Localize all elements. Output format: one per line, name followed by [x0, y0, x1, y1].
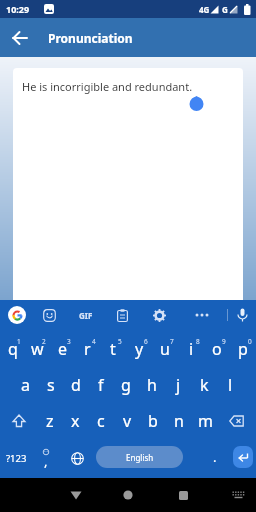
button[interactable]: f — [88, 367, 113, 403]
button[interactable]: v — [114, 403, 140, 439]
button[interactable]: l — [217, 367, 243, 403]
staticText: ?123 — [6, 452, 27, 465]
staticText: v — [123, 410, 132, 432]
button[interactable]: s — [38, 367, 63, 403]
button[interactable]: u — [152, 330, 178, 367]
staticText: 4 — [92, 337, 96, 346]
button[interactable]: a — [13, 367, 38, 403]
staticText: q — [8, 338, 18, 360]
staticText: English — [126, 452, 154, 463]
button[interactable]: i — [178, 330, 204, 367]
button[interactable]: k — [191, 367, 217, 403]
button[interactable]: . — [200, 439, 230, 478]
button[interactable] — [228, 478, 248, 512]
button[interactable]: n — [166, 403, 192, 439]
staticText: 5 — [118, 337, 122, 346]
staticText: o — [212, 338, 222, 360]
button[interactable]: p — [230, 330, 256, 367]
button[interactable]: , — [32, 439, 60, 478]
button[interactable] — [115, 308, 129, 322]
staticText: m — [198, 410, 213, 432]
button[interactable] — [60, 439, 94, 478]
staticText: c — [97, 410, 105, 432]
staticText: z — [46, 410, 54, 432]
staticText: d — [71, 374, 81, 396]
button[interactable] — [64, 478, 88, 512]
button[interactable]: d — [63, 367, 88, 403]
staticText: . — [213, 448, 217, 466]
staticText: k — [200, 374, 209, 396]
staticText: GIF — [79, 310, 93, 321]
button[interactable]: ?123 — [0, 439, 32, 478]
staticText: 6 — [144, 337, 148, 346]
staticText: 0 — [248, 337, 252, 346]
button[interactable]: j — [165, 367, 191, 403]
button[interactable]: r — [75, 330, 100, 367]
button[interactable] — [42, 308, 56, 322]
button[interactable] — [194, 308, 210, 322]
button[interactable]: y — [126, 330, 152, 367]
staticText: f — [98, 374, 104, 396]
button[interactable] — [116, 478, 140, 512]
button[interactable]: GIF — [74, 300, 98, 330]
staticText: h — [147, 374, 157, 396]
button[interactable]: b — [140, 403, 166, 439]
button[interactable] — [8, 306, 26, 324]
button[interactable]: English — [96, 446, 183, 468]
staticText: e — [58, 338, 68, 360]
staticText: He is incorrigible and redundant. — [22, 79, 193, 94]
button[interactable]: x — [62, 403, 88, 439]
button[interactable] — [218, 403, 256, 439]
button[interactable]: h — [139, 367, 165, 403]
staticText: 7 — [170, 337, 174, 346]
button[interactable]: q — [0, 330, 25, 367]
staticText: G — [222, 4, 228, 15]
button[interactable] — [235, 307, 250, 324]
button[interactable]: w — [25, 330, 50, 367]
staticText: Pronunciation — [48, 30, 133, 46]
button[interactable] — [171, 478, 195, 512]
button[interactable]: g — [113, 367, 139, 403]
button[interactable] — [233, 446, 253, 468]
button[interactable]: e — [50, 330, 75, 367]
staticText: a — [21, 374, 30, 396]
staticText: 3 — [67, 337, 71, 346]
staticText: r — [84, 338, 91, 360]
button[interactable] — [152, 308, 166, 322]
staticText: p — [238, 338, 248, 360]
staticText: g — [121, 374, 131, 396]
button[interactable] — [0, 18, 40, 57]
button[interactable]: c — [88, 403, 114, 439]
button[interactable]: m — [192, 403, 218, 439]
staticText: j — [176, 374, 181, 396]
staticText: 4G — [199, 4, 210, 15]
button[interactable] — [0, 403, 37, 439]
staticText: s — [47, 374, 55, 396]
staticText: n — [174, 410, 184, 432]
staticText: 9 — [222, 337, 226, 346]
staticText: 2 — [42, 337, 46, 346]
staticText: x — [71, 410, 80, 432]
button[interactable]: t — [100, 330, 126, 367]
button[interactable]: o — [204, 330, 230, 367]
staticText: t — [110, 338, 116, 360]
button[interactable]: z — [37, 403, 62, 439]
staticText: 8 — [196, 337, 200, 346]
staticText: 1 — [17, 337, 21, 346]
staticText: , — [44, 452, 48, 470]
button[interactable]: He is incorrigible and redundant. — [13, 68, 243, 300]
staticText: l — [228, 374, 233, 396]
staticText: b — [148, 410, 158, 432]
staticText: y — [135, 338, 144, 360]
staticText: u — [160, 338, 170, 360]
staticText: 10:29 — [6, 3, 30, 15]
staticText: w — [31, 338, 44, 360]
staticText: i — [189, 338, 194, 360]
